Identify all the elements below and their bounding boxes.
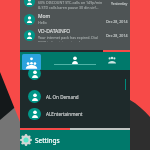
button[interactable]: Anu <box>20 0 130 10</box>
staticText: Mom <box>38 13 51 20</box>
button[interactable]: AL On Demand <box>20 85 130 108</box>
button[interactable]: Group icon <box>22 54 41 70</box>
button[interactable]: Groups tab <box>93 52 130 70</box>
staticText: AL On Demand <box>46 94 79 100</box>
button[interactable]: ALEntertainment <box>20 108 130 120</box>
staticText: Hello <box>38 20 47 25</box>
button[interactable]: Mom <box>20 10 130 28</box>
staticText: Yesterday <box>111 1 128 6</box>
staticText: ALEntertainment <box>46 111 83 117</box>
button[interactable]: Contacts tab <box>20 52 56 70</box>
staticText: Your internet pack has expired. Dial *11… <box>38 35 98 42</box>
staticText: 60% DISCOUNT STC-calls on 149p/min & STD… <box>38 0 103 10</box>
staticText: Dec 28, 2014 <box>106 19 128 24</box>
staticText: Dec 28, 2014 <box>106 33 128 38</box>
staticText: VD-DATAINFO <box>38 28 71 35</box>
button[interactable] <box>20 62 130 85</box>
staticText: Settings <box>35 136 60 145</box>
button[interactable] <box>20 128 130 150</box>
button[interactable]: VD-DATAINFO <box>20 28 130 42</box>
button[interactable]: Chats tab <box>56 52 93 70</box>
